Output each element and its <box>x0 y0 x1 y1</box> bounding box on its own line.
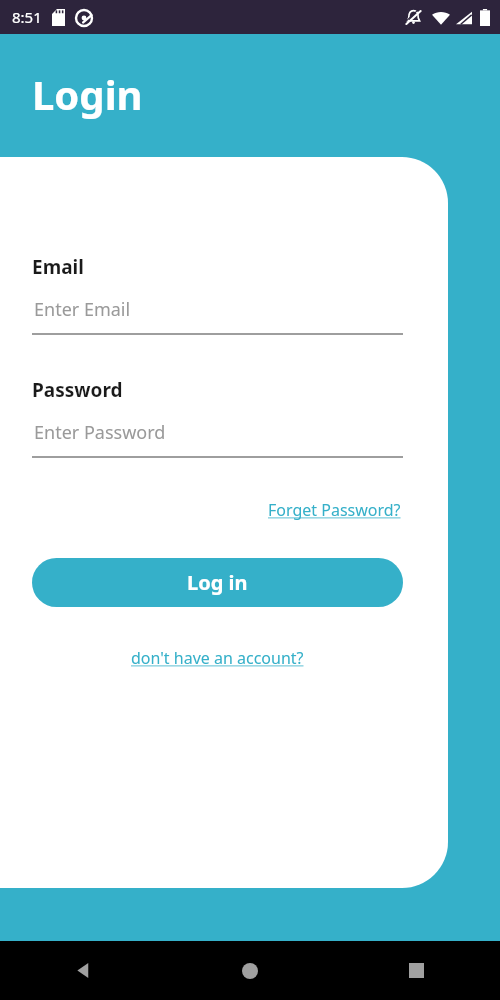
staticText: don't have an account? <box>131 647 304 669</box>
button[interactable]: Forget Password? <box>266 496 403 524</box>
staticText: Email <box>32 254 84 280</box>
button[interactable]: Log in <box>32 558 403 607</box>
staticText: Forget Password? <box>268 499 401 521</box>
staticText: Password <box>32 377 123 403</box>
staticText: Log in <box>187 569 248 596</box>
staticText: 8:51 <box>12 7 42 27</box>
button[interactable]: Back <box>0 941 166 1000</box>
button[interactable]: Home <box>166 941 333 1000</box>
staticText: Enter Email <box>34 297 131 322</box>
button[interactable]: Recent apps <box>333 941 500 1000</box>
button[interactable]: Enter Password <box>32 418 403 458</box>
button[interactable]: don't have an account? <box>129 644 306 672</box>
button[interactable]: Enter Email <box>32 295 403 335</box>
staticText: Enter Password <box>34 420 166 445</box>
staticText: Login <box>32 67 143 121</box>
